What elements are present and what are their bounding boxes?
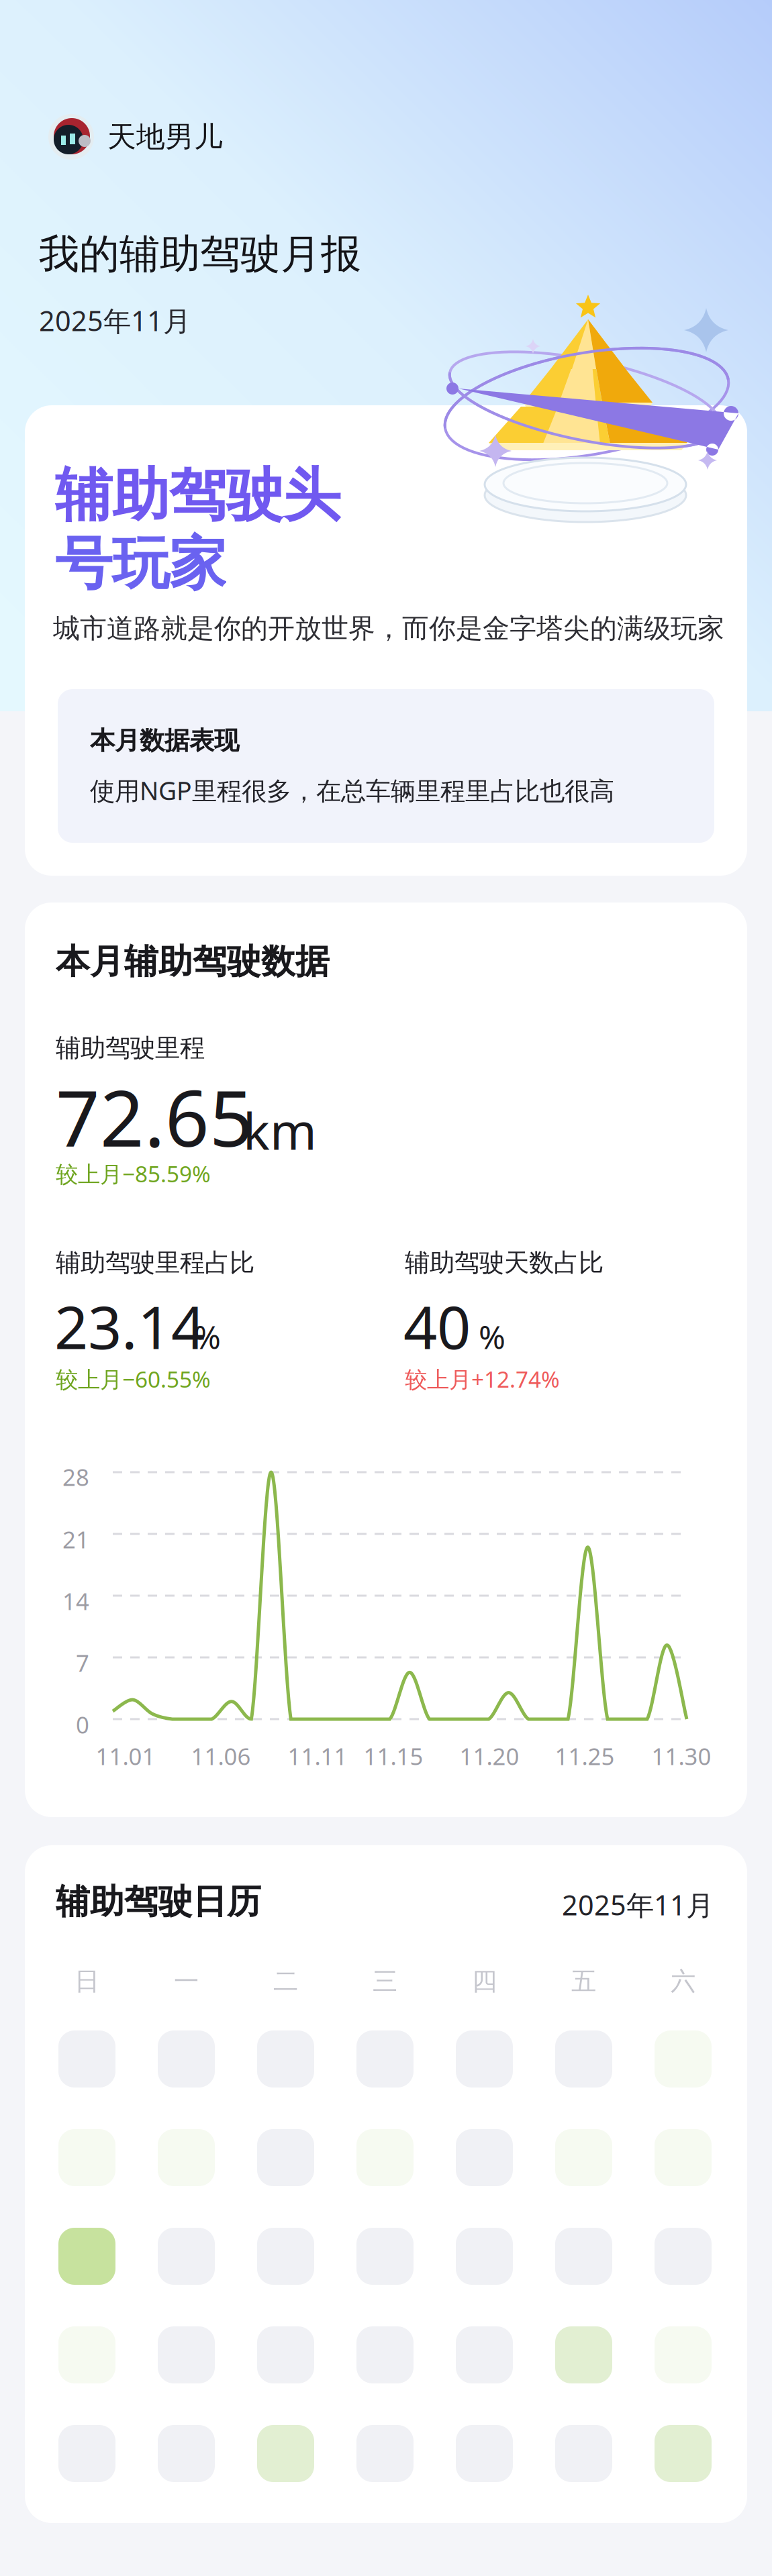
staticText: 四: [472, 1966, 497, 1997]
staticText: km: [243, 1097, 317, 1164]
staticText: 11.11: [288, 1741, 347, 1771]
staticText: 辅助驾驶里程: [56, 1033, 205, 1063]
staticText: 辅助驾驶天数占比: [405, 1247, 604, 1278]
staticText: 六: [671, 1966, 695, 1997]
staticText: 14: [62, 1586, 89, 1616]
staticText: 一: [174, 1966, 199, 1997]
staticText: 23.14: [54, 1287, 205, 1365]
staticText: 辅助驾驶里程占比: [56, 1247, 254, 1278]
staticText: %: [479, 1315, 505, 1358]
staticText: 较上月+12.74%: [405, 1364, 560, 1394]
staticText: 7: [76, 1647, 89, 1678]
staticText: 0: [76, 1709, 89, 1740]
staticText: 五: [571, 1966, 596, 1997]
staticText: 11.15: [364, 1741, 423, 1771]
staticText: 较上月−60.55%: [56, 1364, 211, 1394]
staticText: 11.25: [555, 1741, 615, 1771]
staticText: 城市道路就是你的开放世界，而你是金字塔尖的满级玩家: [53, 612, 724, 645]
staticText: 我的辅助驾驶月报: [39, 229, 361, 279]
staticText: 21: [62, 1524, 89, 1555]
staticText: 本月数据表现: [90, 725, 239, 756]
staticText: 11.01: [96, 1741, 155, 1771]
staticText: 11.30: [652, 1741, 711, 1771]
staticText: 40: [403, 1287, 471, 1365]
staticText: 号玩家: [55, 529, 226, 599]
staticText: 辅助驾驶日历: [56, 1881, 261, 1923]
staticText: 二: [273, 1966, 298, 1997]
staticText: 日: [75, 1966, 99, 1997]
staticText: 11.06: [191, 1741, 251, 1771]
staticText: %: [194, 1315, 221, 1358]
staticText: 较上月−85.59%: [56, 1159, 211, 1189]
staticText: 11.20: [460, 1741, 519, 1771]
staticText: 本月辅助驾驶数据: [56, 941, 330, 982]
staticText: 使用NGP里程很多，在总车辆里程里占比也很高: [90, 774, 614, 807]
staticText: 72.65: [56, 1066, 254, 1168]
staticText: 2025年11月: [562, 1886, 714, 1923]
staticText: 辅助驾驶头: [55, 460, 340, 531]
staticText: 28: [62, 1461, 89, 1492]
staticText: 三: [373, 1966, 397, 1997]
staticText: 天地男儿: [107, 119, 223, 154]
staticText: 2025年11月: [39, 302, 191, 339]
